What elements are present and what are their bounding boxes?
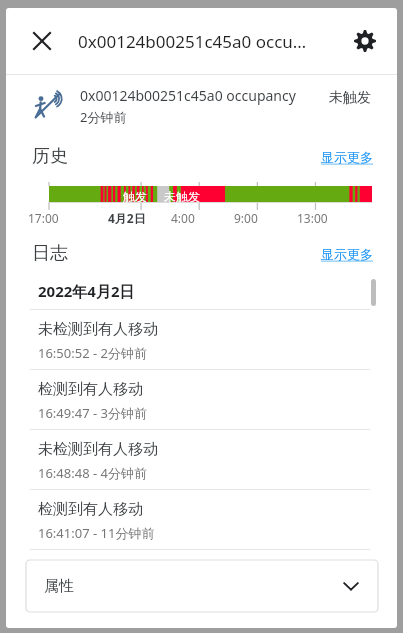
button[interactable]: 未检测到有人移动: [6, 310, 397, 369]
staticText: 触发: [123, 189, 147, 204]
button[interactable]: 检测到有人移动: [6, 490, 397, 549]
button[interactable]: 显示更多: [321, 149, 373, 165]
staticText: 16:49:47 - 3分钟前: [38, 404, 147, 422]
staticText: 4:00: [171, 210, 195, 226]
staticText: 未触发: [329, 89, 371, 107]
button[interactable]: 显示更多: [321, 246, 373, 262]
staticText: 属性: [44, 577, 74, 596]
button[interactable]: 属性: [26, 560, 378, 612]
staticText: 13:00: [297, 210, 328, 226]
staticText: 9:00: [234, 210, 258, 226]
staticText: 16:41:07 - 11分钟前: [38, 524, 155, 542]
staticText: 未触发: [164, 189, 200, 204]
staticText: 历史: [32, 145, 68, 168]
button[interactable]: 检测到有人移动: [6, 370, 397, 429]
button[interactable]: Close: [20, 19, 64, 63]
button[interactable]: Settings: [343, 19, 387, 63]
staticText: 检测到有人移动: [38, 500, 143, 519]
staticText: 显示更多: [321, 246, 373, 262]
staticText: 未检测到有人移动: [38, 440, 158, 459]
staticText: 16:48:48 - 4分钟前: [38, 464, 147, 482]
staticText: 2022年4月2日: [38, 281, 135, 301]
staticText: 2分钟前: [80, 108, 127, 126]
staticText: 检测到有人移动: [38, 380, 143, 399]
staticText: 0x00124b00251c45a0 occupancy: [80, 86, 296, 105]
staticText: 未检测到有人移动: [38, 320, 158, 339]
button[interactable]: 未检测到有人移动: [6, 430, 397, 489]
staticText: 日志: [32, 242, 68, 265]
staticText: 显示更多: [321, 149, 373, 165]
staticText: 17:00: [28, 210, 59, 226]
button[interactable]: 0x00124b00251c45a0 occupancy: [6, 75, 397, 137]
staticText: 4月2日: [108, 210, 146, 226]
staticText: 16:50:52 - 2分钟前: [38, 344, 147, 362]
staticText: 0x00124b00251c45a0 occu…: [78, 30, 307, 53]
